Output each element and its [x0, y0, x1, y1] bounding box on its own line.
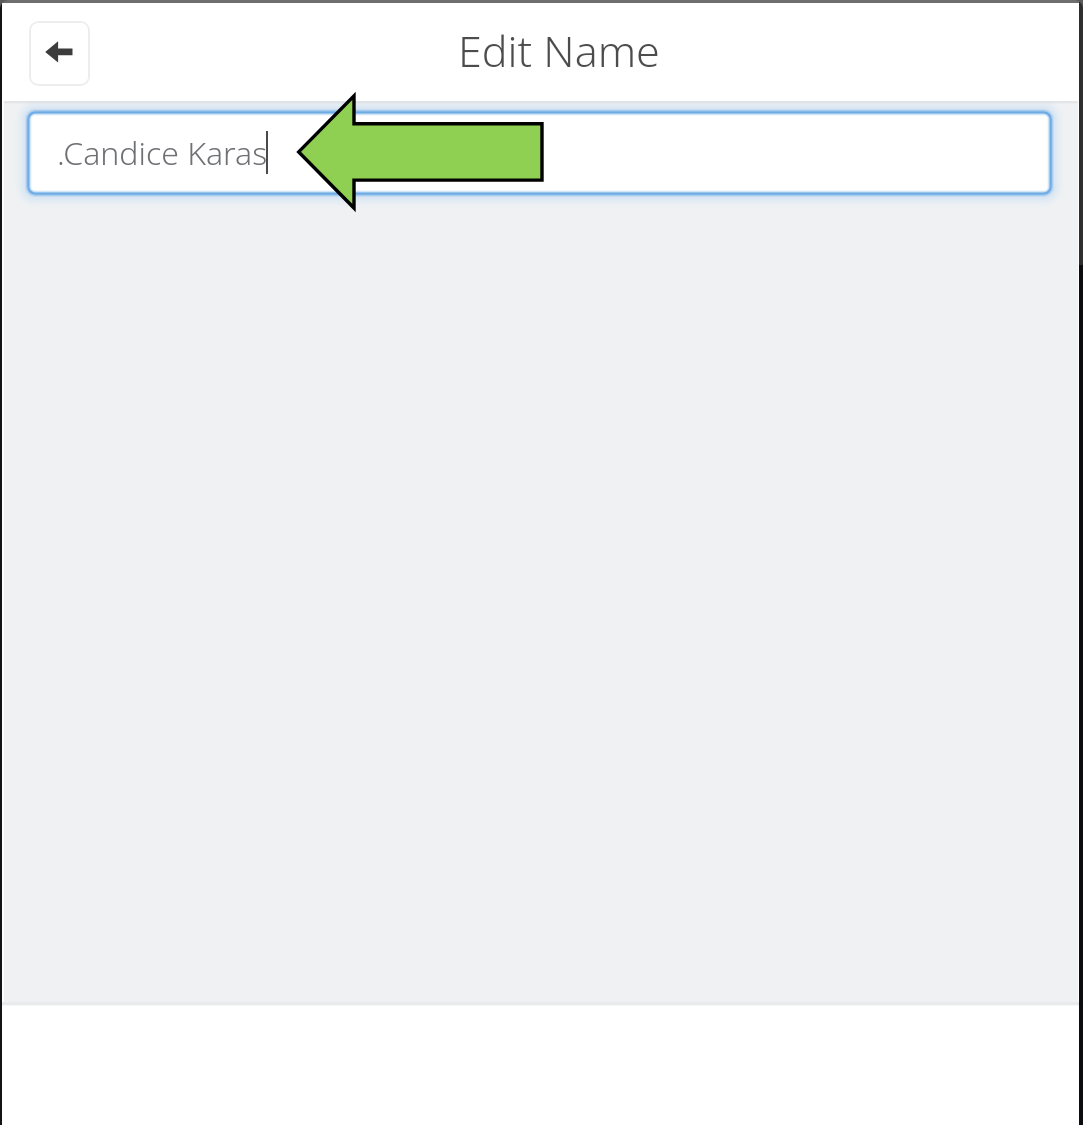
button[interactable]: Back — [29, 21, 90, 86]
staticText: .Candice Karas — [57, 131, 268, 175]
button[interactable]: .Candice Karas — [27, 111, 1052, 195]
staticText: Edit Name — [458, 21, 660, 80]
